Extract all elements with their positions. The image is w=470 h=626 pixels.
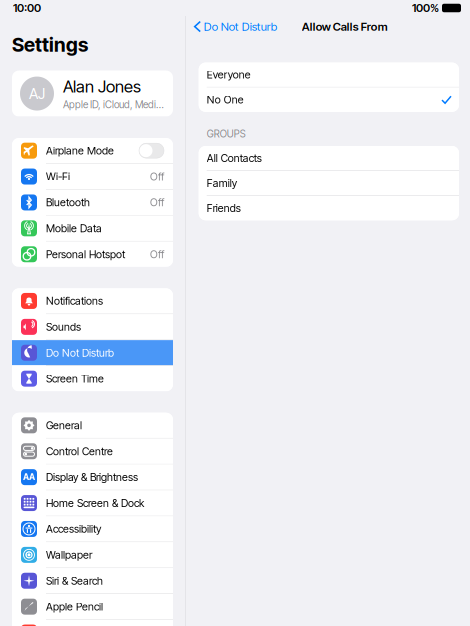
button[interactable]: Everyone [199, 63, 459, 87]
staticText: Bluetooth [46, 196, 90, 209]
staticText: Do Not Disturb [46, 346, 114, 359]
button[interactable]: Sounds [12, 314, 173, 339]
staticText: Display & Brightness [46, 471, 138, 484]
staticText: Siri & Search [46, 574, 103, 587]
button[interactable]: All Contacts [199, 146, 459, 170]
button[interactable]: Touch ID & Passcode [12, 620, 173, 626]
staticText: Screen Time [46, 372, 104, 385]
staticText: Off [150, 196, 164, 209]
staticText: GROUPS [207, 128, 246, 140]
button[interactable]: Control Centre [12, 439, 173, 464]
staticText: 100% [412, 1, 439, 15]
staticText: Everyone [207, 68, 251, 81]
staticText: AA [23, 472, 35, 482]
button[interactable]: Wallpaper [12, 542, 173, 567]
button[interactable]: Friends [199, 196, 459, 220]
staticText: Apple ID, iCloud, Media &... [63, 99, 165, 111]
staticText: Off [150, 248, 164, 261]
button[interactable]: Family [199, 171, 459, 195]
staticText: Wallpaper [46, 548, 92, 561]
staticText: AJ [29, 85, 45, 102]
button[interactable]: Home Screen & Dock [12, 490, 173, 516]
staticText: Mobile Data [46, 222, 102, 235]
staticText: Control Centre [46, 445, 113, 458]
staticText: 10:00 [13, 1, 41, 15]
button[interactable]: Do Not Disturb [186, 16, 283, 38]
staticText: Wi-Fi [46, 170, 70, 183]
staticText: Airplane Mode [46, 144, 114, 157]
staticText: Notifications [46, 294, 103, 307]
staticText: Personal Hotspot [46, 248, 125, 261]
staticText: Allow Calls From [302, 20, 388, 33]
staticText: Do Not Disturb [204, 20, 277, 33]
staticText: Home Screen & Dock [46, 497, 144, 509]
button[interactable]: Notifications [12, 288, 173, 314]
staticText: Apple Pencil [46, 600, 103, 613]
button[interactable]: AA [12, 465, 173, 490]
button[interactable]: AJ [12, 71, 173, 117]
staticText: All Contacts [207, 152, 262, 165]
staticText: Friends [207, 202, 241, 215]
button[interactable]: Mobile Data [12, 216, 173, 241]
staticText: Sounds [46, 320, 81, 333]
button[interactable]: Bluetooth [12, 190, 173, 215]
staticText: Alan Jones [63, 76, 141, 97]
button[interactable]: Wi-Fi [12, 164, 173, 189]
staticText: General [46, 419, 82, 432]
staticText: Settings [12, 33, 88, 57]
staticText: Family [207, 177, 237, 190]
staticText: Off [150, 170, 164, 183]
button[interactable]: Apple Pencil [12, 594, 173, 619]
staticText: Accessibility [46, 522, 101, 535]
button[interactable]: Personal Hotspot [12, 242, 173, 267]
button[interactable]: Airplane Mode [12, 138, 173, 163]
button[interactable]: Screen Time [12, 366, 173, 391]
staticText: No One [207, 93, 244, 106]
button[interactable]: General [12, 413, 173, 438]
button[interactable]: Accessibility [12, 516, 173, 542]
button[interactable]: Do Not Disturb [12, 340, 173, 365]
button[interactable]: No One [199, 88, 459, 112]
button[interactable]: Siri & Search [12, 568, 173, 593]
